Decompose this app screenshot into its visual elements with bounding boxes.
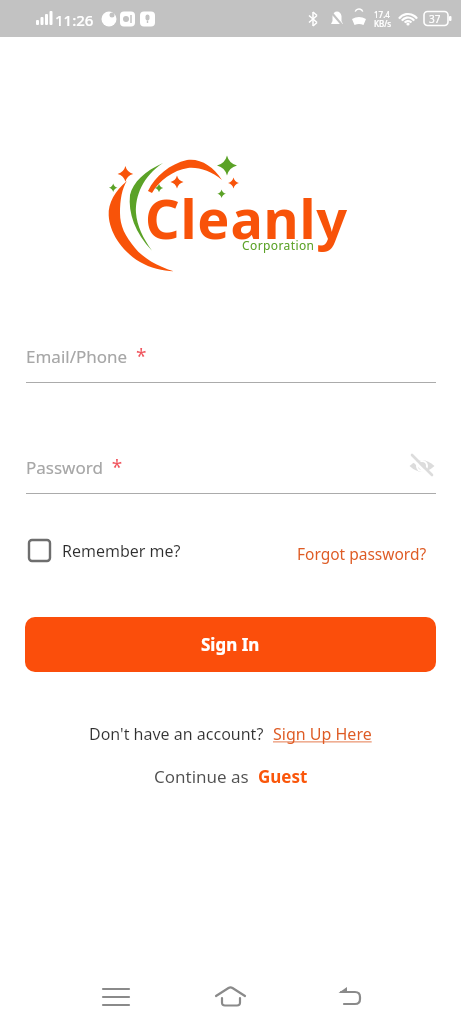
button[interactable] [95, 976, 137, 1018]
button[interactable]: Sign In [25, 617, 436, 672]
button[interactable]: Remember me? [28, 539, 181, 562]
button[interactable]: Password * [26, 451, 436, 494]
staticText: Sign In [201, 633, 260, 656]
staticText: Guest [258, 765, 308, 788]
staticText: Sign Up Here [273, 723, 372, 745]
button[interactable]: Guest [258, 765, 308, 788]
staticText: Continue as [154, 765, 258, 788]
button[interactable] [329, 976, 371, 1018]
staticText: Forgot password? [297, 543, 427, 564]
staticText: 11:26 [55, 10, 94, 30]
staticText: KB/s [374, 18, 392, 29]
button[interactable]: Email/Phone * [26, 340, 436, 383]
button[interactable] [209, 976, 251, 1018]
staticText: Don't have an account? [89, 723, 264, 745]
staticText: 17.4 [374, 9, 390, 20]
staticText: Email/Phone * [26, 343, 147, 369]
staticText: Remember me? [62, 540, 181, 562]
button[interactable] [407, 451, 437, 481]
staticText: 37 [429, 12, 441, 26]
staticText: Corporation [242, 237, 315, 253]
staticText: Cleanly [145, 181, 348, 255]
button[interactable]: Forgot password? [297, 543, 427, 564]
staticText: Password * [26, 454, 123, 480]
button[interactable]: Sign Up Here [273, 723, 372, 745]
